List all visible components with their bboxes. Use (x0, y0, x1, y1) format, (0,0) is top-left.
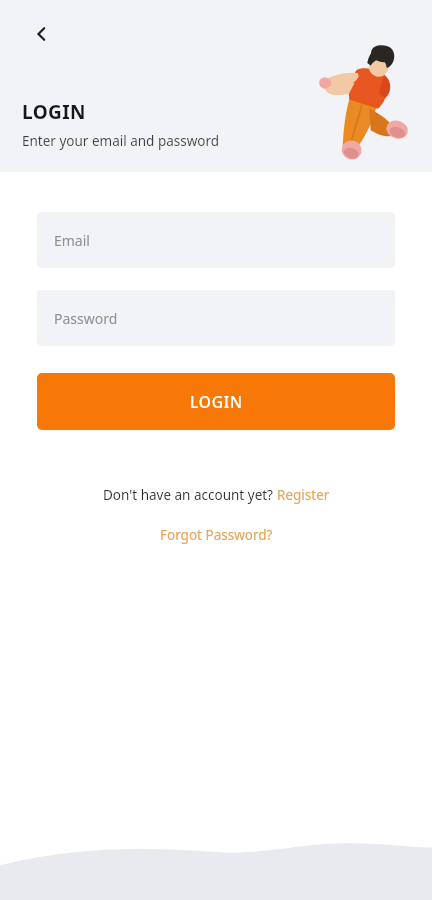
staticText: Password (54, 309, 118, 328)
staticText: Forgot Password? (160, 526, 273, 544)
button[interactable]: LOGIN (37, 373, 395, 430)
staticText: Don't have an account yet? (103, 486, 277, 504)
staticText: Email (54, 231, 90, 250)
staticText: LOGIN (190, 391, 243, 412)
button[interactable]: Register (277, 486, 330, 504)
staticText: Register (277, 486, 330, 504)
button[interactable]: Email (37, 212, 395, 268)
button[interactable]: Forgot Password? (160, 526, 273, 544)
staticText: Enter your email and password (22, 132, 220, 150)
button[interactable]: Password (37, 290, 395, 346)
staticText: LOGIN (22, 99, 86, 125)
button[interactable]: Back (20, 12, 64, 56)
